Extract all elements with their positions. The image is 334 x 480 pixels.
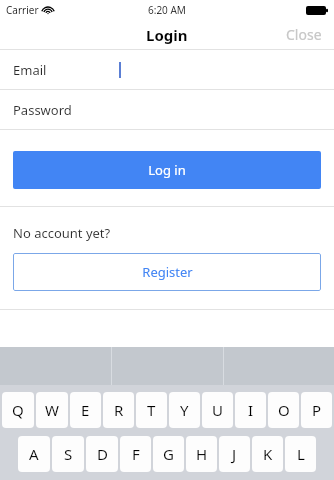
staticText: Q (12, 400, 24, 420)
button[interactable]: E (70, 392, 101, 428)
button[interactable]: T (136, 392, 167, 428)
button[interactable]: F (120, 436, 151, 472)
button[interactable]: A (18, 436, 50, 472)
button[interactable]: P (301, 392, 332, 428)
staticText: F (132, 444, 140, 464)
staticText: G (163, 444, 174, 464)
staticText: H (196, 444, 208, 464)
button[interactable]: D (86, 436, 118, 472)
button[interactable]: Register (13, 253, 321, 291)
button[interactable]: O (268, 392, 299, 428)
button[interactable]: Close (274, 21, 334, 48)
staticText: W (45, 400, 59, 420)
staticText: D (97, 444, 108, 464)
staticText: 6:20 AM (148, 3, 186, 17)
button[interactable]: J (219, 436, 250, 472)
staticText: Y (180, 400, 189, 420)
button[interactable]: I (235, 392, 266, 428)
staticText: Password (13, 101, 72, 119)
staticText: P (312, 400, 322, 420)
button[interactable]: Log in (13, 151, 321, 189)
staticText: Login (146, 25, 188, 45)
staticText: Close (286, 25, 322, 44)
staticText: U (212, 400, 223, 420)
staticText: K (263, 444, 273, 464)
staticText: Email (13, 61, 47, 79)
staticText: No account yet? (13, 224, 111, 242)
button[interactable]: L (285, 436, 316, 472)
staticText: E (81, 400, 90, 420)
button[interactable]: Email (0, 50, 334, 89)
staticText: S (64, 444, 73, 464)
button[interactable]: R (103, 392, 134, 428)
staticText: Register (142, 263, 193, 281)
button[interactable]: S (52, 436, 84, 472)
staticText: I (248, 400, 254, 420)
button[interactable]: H (186, 436, 217, 472)
staticText: Carrier (6, 3, 39, 17)
button[interactable]: K (252, 436, 283, 472)
staticText: L (297, 444, 305, 464)
staticText: R (114, 400, 124, 420)
staticText: Log in (148, 161, 186, 179)
button[interactable]: Q (2, 392, 34, 428)
staticText: O (278, 400, 290, 420)
button[interactable]: Y (169, 392, 200, 428)
staticText: A (29, 444, 39, 464)
staticText: J (232, 444, 237, 464)
staticText: T (147, 400, 156, 420)
button[interactable]: Password (0, 90, 334, 129)
button[interactable]: W (36, 392, 68, 428)
button[interactable]: U (202, 392, 233, 428)
button[interactable]: G (153, 436, 184, 472)
